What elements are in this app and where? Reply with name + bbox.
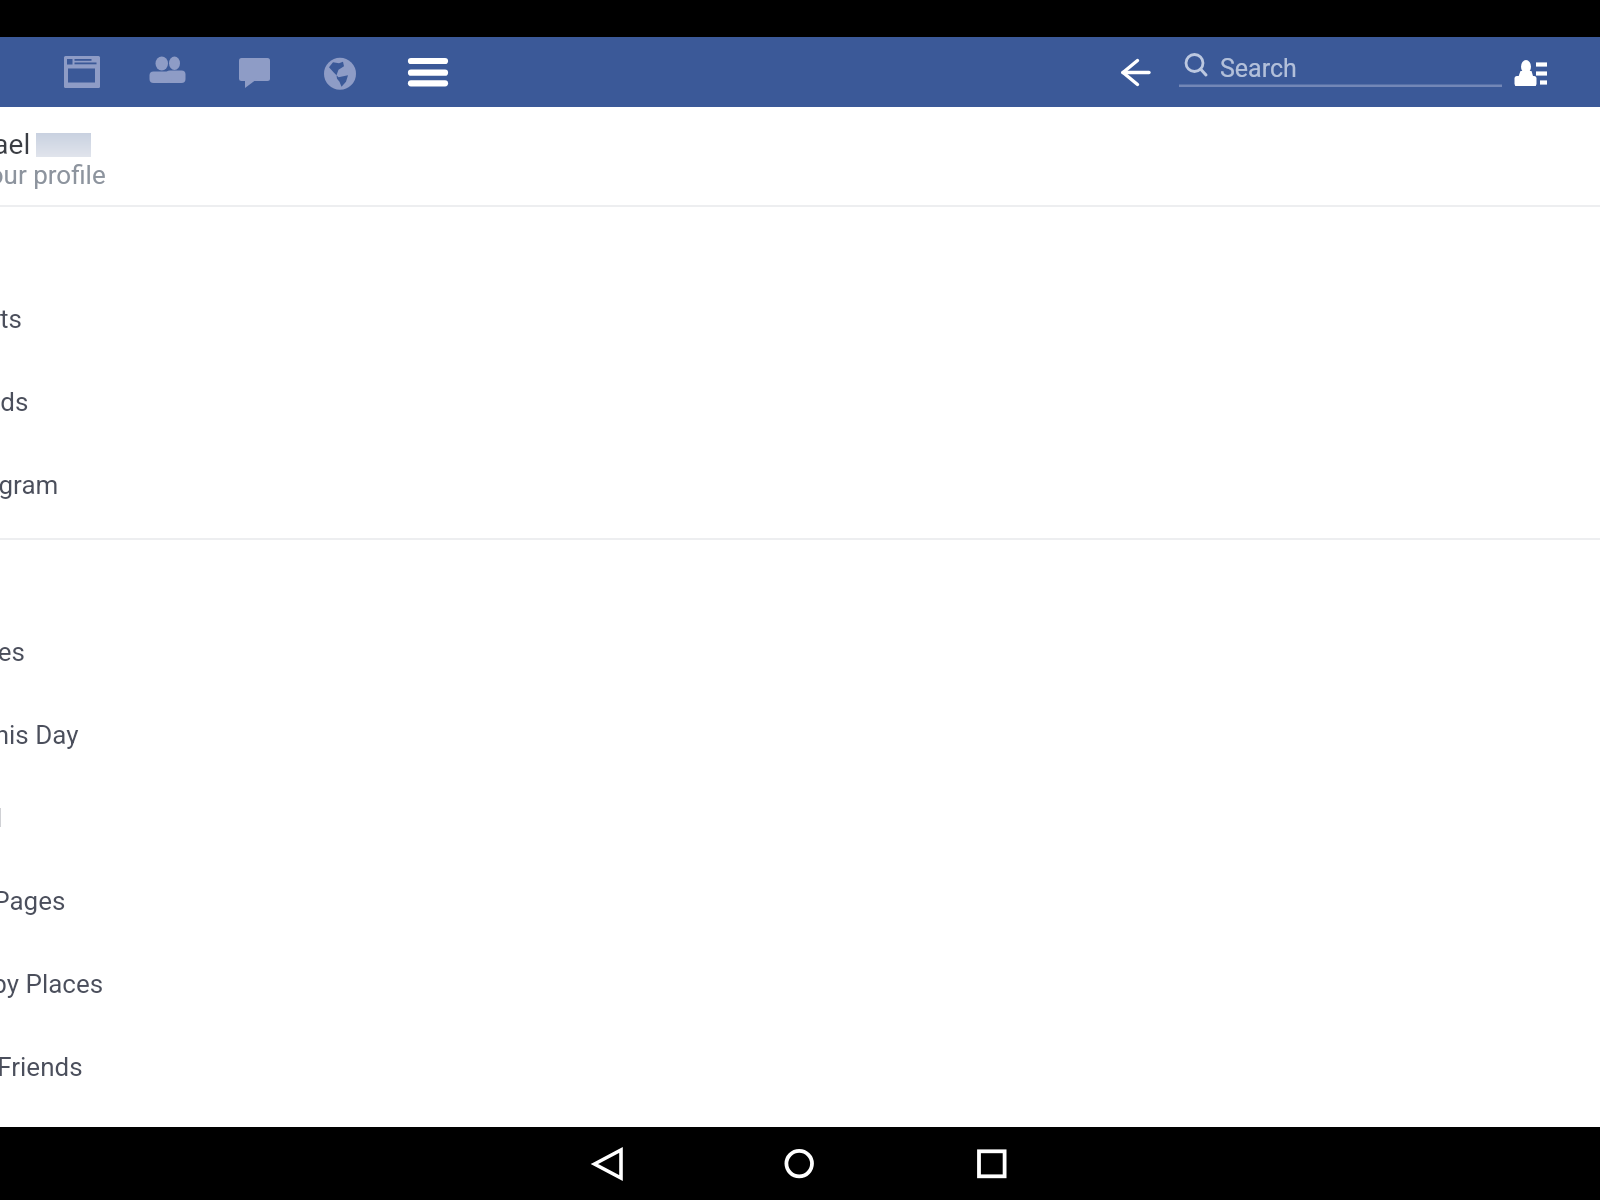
button[interactable]: Games [0, 610, 1600, 693]
button[interactable]: Recent apps [970, 1140, 1014, 1188]
staticText: On This Day [0, 720, 79, 750]
staticText: Find Friends [0, 1052, 83, 1082]
button[interactable]: Menu [407, 54, 445, 92]
button[interactable]: Back [1121, 55, 1151, 91]
button[interactable]: Nearby Places [0, 942, 1600, 1025]
staticText: Events [0, 304, 22, 334]
staticText: Liked Pages [0, 886, 66, 916]
staticText: Games [0, 637, 25, 667]
staticText: Friends [0, 387, 29, 417]
button[interactable]: Contacts [1512, 59, 1548, 89]
staticText: Instagram [0, 470, 59, 500]
button[interactable]: Back [586, 1140, 630, 1188]
button[interactable]: On This Day [0, 693, 1600, 776]
staticText: Michael [0, 128, 31, 161]
button[interactable]: Michael [0, 110, 1600, 206]
staticText: Nearby Places [0, 969, 104, 999]
staticText: Search [1220, 54, 1297, 83]
button[interactable]: Search [1179, 49, 1502, 87]
button[interactable]: Friend Requests [148, 55, 188, 89]
button[interactable]: News Feed [60, 51, 104, 93]
button[interactable]: Home [777, 1140, 821, 1188]
button[interactable]: Liked Pages [0, 859, 1600, 942]
button[interactable]: Instagram [0, 443, 1600, 526]
button[interactable]: Find Friends [0, 1025, 1600, 1108]
button[interactable]: Friends [0, 360, 1600, 443]
button[interactable]: Messages [236, 54, 274, 90]
button[interactable]: Notifications [322, 53, 358, 91]
button[interactable]: Events [0, 277, 1600, 360]
staticText: View your profile [0, 160, 106, 190]
staticText: Saved [0, 803, 3, 833]
